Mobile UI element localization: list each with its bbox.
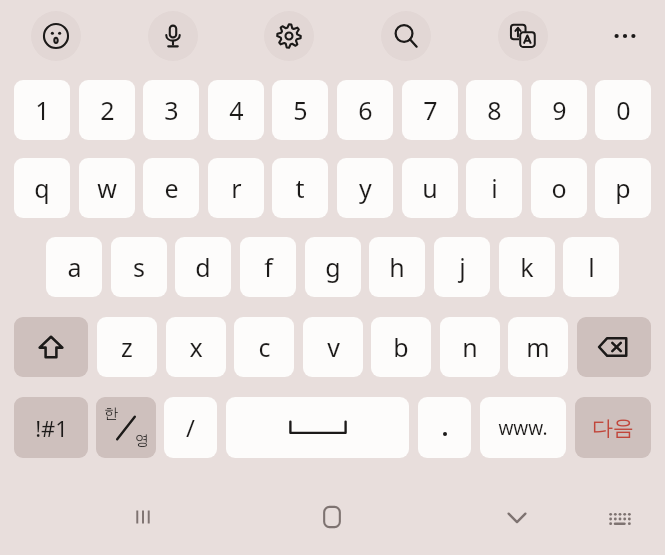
button[interactable]: Next bbox=[575, 397, 651, 458]
staticText: s bbox=[133, 250, 145, 284]
staticText: 4 bbox=[229, 93, 244, 127]
button[interactable]: e bbox=[143, 158, 199, 218]
staticText: w bbox=[97, 171, 117, 205]
button[interactable]: u bbox=[402, 158, 458, 218]
staticText: z bbox=[121, 330, 133, 364]
button[interactable]: i bbox=[466, 158, 522, 218]
staticText: y bbox=[359, 171, 372, 205]
button[interactable]: Period bbox=[418, 397, 471, 458]
staticText: e bbox=[164, 171, 179, 205]
staticText: r bbox=[231, 171, 242, 205]
button[interactable]: 7 bbox=[402, 80, 458, 140]
staticText: o bbox=[551, 171, 567, 205]
button[interactable]: g bbox=[305, 237, 361, 297]
button[interactable]: Backspace bbox=[577, 317, 651, 377]
button[interactable]: Emoji bbox=[31, 11, 81, 61]
button[interactable]: z bbox=[97, 317, 157, 377]
button[interactable]: k bbox=[499, 237, 555, 297]
button[interactable]: h bbox=[369, 237, 425, 297]
button[interactable]: t bbox=[272, 158, 328, 218]
button[interactable]: 6 bbox=[337, 80, 393, 140]
staticText: h bbox=[389, 250, 405, 284]
button[interactable]: o bbox=[531, 158, 587, 218]
button[interactable]: a bbox=[46, 237, 102, 297]
staticText: 0 bbox=[616, 93, 631, 127]
staticText: 5 bbox=[293, 93, 308, 127]
button[interactable]: Switch keyboard bbox=[596, 495, 644, 543]
staticText: !#1 bbox=[35, 413, 68, 443]
button[interactable]: b bbox=[371, 317, 431, 377]
staticText: 2 bbox=[100, 93, 115, 127]
button[interactable]: d bbox=[175, 237, 231, 297]
button[interactable]: w bbox=[79, 158, 135, 218]
button[interactable]: Home bbox=[307, 492, 357, 542]
staticText: 1 bbox=[35, 93, 50, 127]
button[interactable]: 4 bbox=[208, 80, 264, 140]
staticText: 3 bbox=[164, 93, 179, 127]
button[interactable]: Hide keyboard bbox=[492, 492, 542, 542]
button[interactable]: Language bbox=[96, 397, 156, 458]
button[interactable]: f bbox=[240, 237, 296, 297]
staticText: 한 bbox=[104, 405, 118, 423]
staticText: i bbox=[491, 171, 498, 205]
button[interactable]: Space bbox=[226, 397, 409, 458]
staticText: u bbox=[422, 171, 438, 205]
button[interactable]: / bbox=[164, 397, 217, 458]
staticText: p bbox=[615, 171, 631, 205]
staticText: v bbox=[327, 330, 340, 364]
staticText: m bbox=[526, 330, 550, 364]
staticText: 9 bbox=[552, 93, 567, 127]
button[interactable]: r bbox=[208, 158, 264, 218]
button[interactable]: 0 bbox=[595, 80, 651, 140]
staticText: 8 bbox=[487, 93, 502, 127]
button[interactable]: Translate bbox=[498, 11, 548, 61]
staticText: q bbox=[34, 171, 50, 205]
button[interactable]: 2 bbox=[79, 80, 135, 140]
button[interactable]: n bbox=[440, 317, 500, 377]
staticText: a bbox=[67, 250, 82, 284]
button[interactable]: Shift bbox=[14, 317, 88, 377]
button[interactable]: q bbox=[14, 158, 70, 218]
staticText: b bbox=[393, 330, 409, 364]
button[interactable]: 8 bbox=[466, 80, 522, 140]
button[interactable]: c bbox=[234, 317, 294, 377]
staticText: n bbox=[462, 330, 478, 364]
button[interactable]: m bbox=[508, 317, 568, 377]
staticText: l bbox=[588, 250, 595, 284]
button[interactable]: www. bbox=[480, 397, 566, 458]
button[interactable]: p bbox=[595, 158, 651, 218]
staticText: g bbox=[325, 250, 341, 284]
button[interactable]: y bbox=[337, 158, 393, 218]
button[interactable]: Voice input bbox=[148, 11, 198, 61]
staticText: c bbox=[258, 330, 271, 364]
button[interactable]: 1 bbox=[14, 80, 70, 140]
button[interactable]: 5 bbox=[272, 80, 328, 140]
button[interactable]: Symbols bbox=[14, 397, 88, 458]
staticText: 6 bbox=[358, 93, 373, 127]
button[interactable]: Settings bbox=[264, 11, 314, 61]
staticText: d bbox=[195, 250, 211, 284]
staticText: 영 bbox=[135, 432, 149, 450]
button[interactable]: v bbox=[303, 317, 363, 377]
staticText: 다음 bbox=[592, 415, 634, 441]
staticText: t bbox=[295, 171, 305, 205]
staticText: www. bbox=[498, 415, 548, 441]
staticText: 7 bbox=[423, 93, 438, 127]
staticText: j bbox=[459, 250, 466, 284]
button[interactable]: s bbox=[111, 237, 167, 297]
staticText: k bbox=[520, 250, 534, 284]
button[interactable]: Search bbox=[381, 11, 431, 61]
button[interactable]: l bbox=[563, 237, 619, 297]
staticText: x bbox=[189, 330, 203, 364]
staticText: / bbox=[186, 411, 195, 444]
button[interactable]: x bbox=[166, 317, 226, 377]
button[interactable]: j bbox=[434, 237, 490, 297]
button[interactable]: 3 bbox=[143, 80, 199, 140]
button[interactable]: 9 bbox=[531, 80, 587, 140]
button[interactable]: Recent apps bbox=[118, 492, 168, 542]
button[interactable]: More options bbox=[600, 11, 650, 61]
staticText: f bbox=[264, 250, 273, 284]
